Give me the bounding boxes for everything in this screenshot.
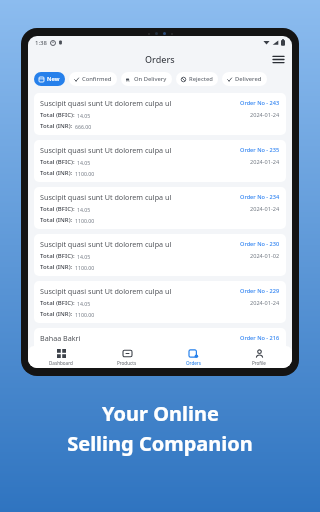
staticText: 2024-01-24 bbox=[250, 299, 280, 307]
staticText: Total (INR): bbox=[40, 263, 73, 271]
staticText: Selling Companion bbox=[67, 430, 253, 457]
button[interactable]: Bahaa Bakri bbox=[34, 328, 286, 368]
staticText: Order No - 235 bbox=[240, 146, 280, 154]
button[interactable]: Orders bbox=[160, 346, 226, 368]
staticText: 666.00 bbox=[75, 123, 92, 130]
staticText: Suscipit quasi sunt Ut dolorem culpa ul bbox=[40, 239, 240, 249]
button[interactable]: Dashboard bbox=[28, 346, 94, 368]
staticText: Your Online bbox=[102, 400, 219, 427]
staticText: 14.05 bbox=[77, 112, 91, 119]
button[interactable]: On Delivery bbox=[121, 72, 172, 86]
staticText: Products bbox=[117, 360, 137, 366]
staticText: 14.05 bbox=[77, 159, 91, 166]
button[interactable]: Suscipit quasi sunt Ut dolorem culpa ul bbox=[34, 187, 286, 229]
staticText: On Delivery bbox=[134, 75, 167, 83]
button[interactable]: Suscipit quasi sunt Ut dolorem culpa ul bbox=[34, 281, 286, 323]
button[interactable]: New bbox=[34, 72, 65, 86]
staticText: 1:38 bbox=[35, 39, 47, 47]
button[interactable]: Suscipit quasi sunt Ut dolorem culpa ul bbox=[34, 234, 286, 276]
staticText: Orders bbox=[186, 360, 201, 366]
staticText: Total (INR): bbox=[40, 169, 73, 177]
staticText: Orders bbox=[145, 53, 175, 65]
staticText: 2024-01-24 bbox=[250, 158, 280, 166]
staticText: Suscipit quasi sunt Ut dolorem culpa ul bbox=[40, 145, 240, 155]
staticText: Suscipit quasi sunt Ut dolorem culpa ul bbox=[40, 98, 240, 108]
staticText: Order No - 216 bbox=[240, 334, 280, 342]
staticText: Total (INR): bbox=[40, 216, 73, 224]
staticText: 14.05 bbox=[77, 253, 91, 260]
staticText: Confirmed bbox=[82, 75, 112, 83]
button[interactable]: Products bbox=[94, 346, 160, 368]
staticText: 2024-01-24 bbox=[250, 111, 280, 119]
staticText: 2024-01-24 bbox=[250, 346, 280, 354]
staticText: Total (INR): bbox=[40, 310, 73, 318]
staticText: Total (BFIC): bbox=[40, 252, 75, 260]
staticText: Total (BFIC): bbox=[40, 158, 75, 166]
staticText: 14.05 bbox=[77, 300, 91, 307]
button[interactable]: Profile bbox=[226, 346, 292, 368]
staticText: Order No - 243 bbox=[240, 99, 280, 107]
staticText: 2024-01-02 bbox=[250, 252, 280, 260]
staticText: 1100.00 bbox=[75, 170, 95, 177]
button[interactable]: Suscipit quasi sunt Ut dolorem culpa ul bbox=[34, 93, 286, 135]
staticText: Suscipit quasi sunt Ut dolorem culpa ul bbox=[40, 192, 240, 202]
staticText: Total (INR): bbox=[40, 122, 73, 130]
staticText: Total (BFIC): bbox=[40, 111, 75, 119]
button[interactable]: Delivered bbox=[222, 72, 267, 86]
staticText: Total (INR): bbox=[40, 357, 73, 363]
staticText: Total (BFIC): bbox=[40, 346, 75, 354]
staticText: Rejected bbox=[189, 75, 213, 83]
staticText: 1100.00 bbox=[75, 311, 95, 318]
staticText: Order No - 229 bbox=[240, 287, 280, 295]
staticText: Order No - 234 bbox=[240, 193, 280, 201]
staticText: Total (BFIC): bbox=[40, 299, 75, 307]
staticText: Dashboard bbox=[49, 360, 73, 366]
button[interactable]: Confirmed bbox=[69, 72, 117, 86]
staticText: 1100.00 bbox=[75, 264, 95, 271]
button[interactable]: Suscipit quasi sunt Ut dolorem culpa ul bbox=[34, 140, 286, 182]
staticText: New bbox=[47, 75, 60, 83]
staticText: 14.05 bbox=[77, 206, 91, 213]
staticText: Order No - 230 bbox=[240, 240, 280, 248]
staticText: Suscipit quasi sunt Ut dolorem culpa ul bbox=[40, 286, 240, 296]
staticText: 1100.00 bbox=[75, 217, 95, 224]
staticText: Profile bbox=[252, 360, 266, 366]
staticText: Total (BFIC): bbox=[40, 205, 75, 213]
staticText: 2024-01-24 bbox=[250, 205, 280, 213]
staticText: Bahaa Bakri bbox=[40, 333, 240, 343]
staticText: Delivered bbox=[235, 75, 262, 83]
button[interactable]: Rejected bbox=[176, 72, 218, 86]
button[interactable]: Menu bbox=[270, 51, 286, 67]
